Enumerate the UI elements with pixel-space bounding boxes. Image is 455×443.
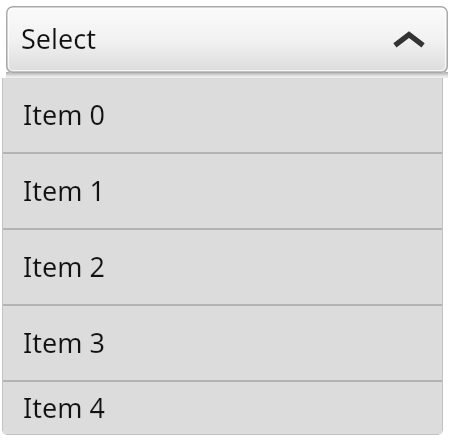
other: Collapse — [386, 17, 432, 63]
staticText: Item 2 — [23, 248, 105, 285]
button[interactable]: Item 4 — [2, 382, 443, 435]
staticText: Item 4 — [23, 389, 105, 426]
staticText: Item 1 — [23, 172, 105, 209]
staticText: Item 0 — [23, 96, 105, 133]
staticText: Item 3 — [23, 324, 105, 361]
button[interactable]: Item 2 — [2, 230, 443, 304]
staticText: Select — [21, 20, 96, 57]
button[interactable]: Item 1 — [2, 154, 443, 228]
button[interactable]: Item 0 — [2, 78, 443, 152]
button[interactable]: Select — [6, 6, 448, 73]
button[interactable]: Item 3 — [2, 306, 443, 380]
